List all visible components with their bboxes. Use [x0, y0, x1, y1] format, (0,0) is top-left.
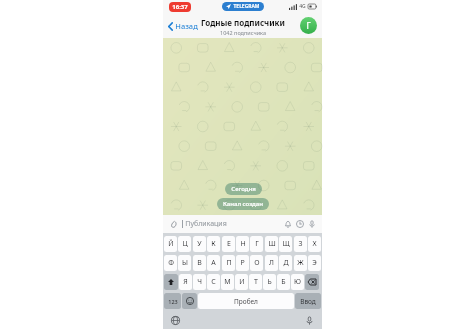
button[interactable]: Backspace: [305, 274, 319, 290]
staticText: Назад: [175, 21, 198, 31]
staticText: Ю: [294, 277, 301, 287]
button[interactable]: Х: [308, 236, 321, 252]
button[interactable]: Shift: [164, 274, 178, 290]
staticText: А: [211, 258, 216, 268]
button[interactable]: Д: [279, 255, 292, 271]
button[interactable]: Ж: [294, 255, 307, 271]
staticText: Ч: [197, 277, 202, 287]
button[interactable]: Channel avatar: [300, 17, 317, 34]
button[interactable]: Voice message: [306, 218, 318, 230]
staticText: Ы: [182, 258, 188, 268]
staticText: Г: [306, 20, 311, 31]
staticText: Публикация: [185, 219, 227, 229]
button[interactable]: С: [207, 274, 220, 290]
button[interactable]: Н: [236, 236, 249, 252]
button[interactable]: М: [221, 274, 234, 290]
staticText: Годные подписчики: [201, 17, 285, 28]
staticText: Ввод: [300, 297, 316, 306]
button[interactable]: Ш: [265, 236, 278, 252]
button[interactable]: Я: [179, 274, 192, 290]
staticText: Й: [168, 239, 174, 249]
button[interactable]: В: [193, 255, 206, 271]
button[interactable]: Ввод: [295, 293, 321, 309]
button[interactable]: У: [193, 236, 206, 252]
staticText: Р: [240, 258, 245, 268]
button[interactable]: Ч: [193, 274, 206, 290]
button[interactable]: Б: [277, 274, 290, 290]
staticText: З: [298, 239, 303, 249]
staticText: Г: [255, 239, 259, 249]
staticText: У: [197, 239, 202, 249]
button[interactable]: Г: [250, 236, 263, 252]
staticText: Т: [254, 277, 258, 287]
button[interactable]: Ю: [291, 274, 304, 290]
staticText: С: [211, 277, 216, 287]
button[interactable]: Switch language: [169, 314, 182, 327]
staticText: И: [239, 277, 245, 287]
button[interactable]: Attach: [167, 218, 179, 230]
staticText: Б: [281, 277, 286, 287]
staticText: П: [226, 258, 232, 268]
staticText: 1042 подписчика: [220, 29, 266, 36]
button[interactable]: Notifications: [282, 218, 294, 230]
button[interactable]: Л: [265, 255, 278, 271]
staticText: Е: [227, 239, 231, 249]
staticText: Ф: [168, 258, 174, 268]
staticText: О: [254, 258, 260, 268]
staticText: 123: [168, 298, 178, 305]
button[interactable]: Emoji: [182, 293, 197, 309]
button[interactable]: П: [222, 255, 235, 271]
staticText: В: [197, 258, 202, 268]
button[interactable]: Пробел: [198, 293, 294, 309]
staticText: Ж: [297, 258, 304, 268]
button[interactable]: Е: [222, 236, 235, 252]
button[interactable]: Ь: [263, 274, 276, 290]
button[interactable]: А: [207, 255, 220, 271]
staticText: Я: [183, 277, 188, 287]
staticText: TELEGRAM: [233, 3, 260, 10]
button[interactable]: Р: [236, 255, 249, 271]
button[interactable]: Публикация: [182, 219, 282, 229]
button[interactable]: Назад: [166, 19, 200, 33]
staticText: Э: [312, 258, 317, 268]
button[interactable]: З: [294, 236, 307, 252]
staticText: Ь: [267, 277, 272, 287]
staticText: Н: [240, 239, 246, 249]
button[interactable]: К: [207, 236, 220, 252]
button[interactable]: Ц: [178, 236, 191, 252]
staticText: 4G: [299, 3, 306, 10]
staticText: Сегодня: [231, 185, 256, 193]
staticText: Ш: [268, 239, 276, 249]
staticText: К: [211, 239, 216, 249]
button[interactable]: Й: [164, 236, 177, 252]
staticText: Щ: [282, 239, 290, 249]
staticText: Ц: [182, 239, 188, 249]
button[interactable]: Schedule: [294, 218, 306, 230]
staticText: Пробел: [234, 297, 258, 306]
button[interactable]: Numbers: [164, 293, 181, 309]
button[interactable]: Щ: [279, 236, 292, 252]
staticText: М: [224, 277, 231, 287]
button[interactable]: Т: [249, 274, 262, 290]
button[interactable]: И: [235, 274, 248, 290]
button[interactable]: Ф: [164, 255, 177, 271]
button[interactable]: Э: [308, 255, 321, 271]
button[interactable]: О: [250, 255, 263, 271]
staticText: Д: [283, 258, 289, 268]
staticText: Л: [269, 258, 274, 268]
button[interactable]: Dictate: [303, 314, 316, 327]
staticText: Канал создан: [223, 200, 263, 208]
staticText: Х: [312, 239, 317, 249]
button[interactable]: Ы: [178, 255, 191, 271]
staticText: 16:37: [172, 3, 188, 11]
